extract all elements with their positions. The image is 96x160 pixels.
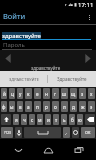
staticText: в [19, 104, 22, 110]
button[interactable]: ЗДРАВСТВУЙТЕ [0, 71, 47, 87]
button[interactable]: здравствуйте [31, 65, 61, 71]
button[interactable]: Backspace [85, 114, 95, 125]
button[interactable]: б [69, 114, 75, 125]
button[interactable]: ц [9, 88, 15, 99]
staticText: ,. [65, 130, 68, 136]
button[interactable]: ж [79, 101, 86, 112]
staticText: н [45, 91, 48, 97]
button[interactable]: н [43, 88, 50, 99]
button[interactable]: ы [9, 101, 15, 112]
button[interactable]: м [37, 114, 43, 125]
staticText: у [19, 91, 22, 97]
staticText: ю [78, 117, 82, 123]
button[interactable]: р [43, 101, 50, 112]
button[interactable]: Previous suggestions [1, 52, 15, 64]
button[interactable]: з [79, 88, 86, 99]
button[interactable]: к [25, 88, 32, 99]
button[interactable]: Next suggestions [81, 52, 95, 64]
staticText: э [90, 104, 93, 110]
button[interactable]: ш [61, 88, 68, 99]
button[interactable]: ,. [63, 127, 70, 138]
staticText: 17:11 [78, 1, 94, 9]
staticText: здравствуйте [2, 32, 41, 40]
button[interactable]: т [53, 114, 59, 125]
button[interactable]: с [29, 114, 35, 125]
staticText: а [27, 104, 30, 110]
button[interactable]: о [52, 101, 59, 112]
button[interactable]: ф [1, 101, 7, 112]
button[interactable]: в [17, 101, 23, 112]
staticText: Пароль [3, 41, 25, 49]
button[interactable]: Home [35, 141, 61, 159]
staticText: OK [85, 130, 91, 135]
button[interactable]: Recent apps [66, 141, 92, 159]
staticText: ж [81, 104, 85, 110]
button[interactable]: ю [77, 114, 83, 125]
staticText: Войти [3, 11, 26, 21]
button[interactable]: OK [81, 127, 95, 138]
staticText: д [72, 104, 75, 110]
staticText: ц [11, 91, 14, 97]
button[interactable]: ч [21, 114, 27, 125]
button[interactable]: Здравствуйте [48, 71, 96, 87]
staticText: ЗДРАВСТВУЙТЕ [9, 77, 39, 82]
staticText: ь [63, 117, 66, 123]
button[interactable]: э [88, 101, 95, 112]
staticText: к [27, 91, 30, 97]
button[interactable]: х [88, 88, 95, 99]
button[interactable]: г [52, 88, 59, 99]
staticText: о [54, 104, 57, 110]
staticText: ч [23, 117, 26, 123]
staticText: м [38, 117, 42, 123]
button[interactable]: у [17, 88, 23, 99]
button[interactable]: ь [61, 114, 67, 125]
staticText: т [55, 117, 58, 123]
button[interactable]: й [1, 88, 7, 99]
button[interactable]: п [34, 101, 41, 112]
button[interactable]: здравствуйте [2, 32, 41, 40]
staticText: ф [2, 104, 6, 110]
staticText: п [36, 104, 39, 110]
button[interactable]: и [45, 114, 51, 125]
staticText: щ [71, 91, 76, 97]
staticText: б [71, 117, 74, 123]
button[interactable]: а [25, 101, 32, 112]
staticText: я [15, 117, 18, 123]
button[interactable]: Emoji [72, 127, 79, 138]
button[interactable]: Shift [1, 114, 11, 125]
staticText: Здравствуйте [57, 76, 87, 82]
button[interactable]: я [13, 114, 19, 125]
button[interactable]: ?123 [1, 127, 13, 138]
staticText: з [81, 91, 84, 97]
button[interactable]: д [70, 101, 77, 112]
button[interactable]: More options [85, 11, 93, 24]
staticText: г [54, 91, 57, 97]
staticText: л [63, 104, 66, 110]
button[interactable]: Back [5, 141, 31, 159]
staticText: й [3, 91, 6, 97]
button[interactable]: щ [70, 88, 77, 99]
staticText: е [36, 91, 39, 97]
staticText: ш [62, 91, 67, 97]
button[interactable]: л [61, 101, 68, 112]
button[interactable]: е [34, 88, 41, 99]
staticText: и [47, 117, 50, 123]
staticText: р [45, 104, 48, 110]
button[interactable]: Voice input [15, 127, 22, 138]
staticText: с [31, 117, 34, 123]
button[interactable]: Space [24, 127, 61, 138]
staticText: х [90, 91, 93, 97]
staticText: здравствуйте [31, 65, 61, 71]
staticText: ?123 [4, 131, 11, 135]
staticText: ы [10, 104, 14, 110]
